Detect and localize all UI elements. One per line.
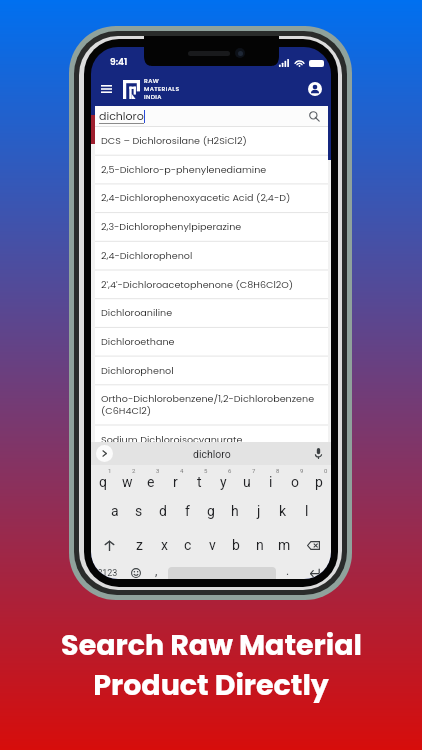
staticText: 9 [300,467,304,474]
button[interactable]: Dichloroaniline [95,298,328,327]
button[interactable]: j [247,496,271,527]
button[interactable]: 2,5-Dichloro-p-phenylenediamine [95,155,328,184]
staticText: v [209,537,216,553]
staticText: m [278,537,291,553]
button[interactable]: c [176,527,200,563]
staticText: z [136,537,143,553]
staticText: l [305,503,309,519]
staticText: t [197,474,202,490]
staticText: ?123 [98,568,118,579]
staticText: 5 [204,467,208,474]
staticText: dichloro [193,448,231,460]
button[interactable]: Ortho-Dichlorobenzene/1,2-Dichlorobenzen… [95,384,328,424]
staticText: y [220,474,227,490]
button[interactable]: Enter [297,563,331,579]
staticText: 2,4-Dichlorophenol [101,249,193,262]
button[interactable]: l [295,496,319,527]
staticText: Dichlorophenol [101,364,174,377]
staticText: 3 [156,467,160,474]
button[interactable]: k [271,496,295,527]
button[interactable]: z [127,527,152,563]
button[interactable]: s [127,496,151,527]
button[interactable]: 2,3-Dichlorophenylpiperazine [95,212,328,241]
button[interactable]: m [272,527,296,563]
button[interactable]: DCS – Dichlorosilane (H2SiCl2) [95,126,328,155]
staticText: b [232,537,240,553]
staticText: Search Raw Material [61,625,362,665]
button[interactable]: Open navigation menu [96,79,116,99]
button[interactable]: Sodium Dichloroisocvanurate [95,425,328,454]
button[interactable]: 2',4'-Dichloroacetophenone (C8H6Cl2O) [95,270,328,299]
staticText: Sodium Dichloroisocvanurate [101,433,243,446]
staticText: n [256,537,264,553]
staticText: Ortho-Dichlorobenzene/1,2-Dichlorobenzen… [101,392,322,417]
staticText: e [147,474,155,490]
staticText: g [207,503,215,519]
staticText: INDIA [144,93,162,101]
button[interactable]: 5 [187,465,211,496]
button[interactable]: ?123 [91,563,124,579]
button[interactable]: x [152,527,176,563]
staticText: 2,4-Dichlorophenoxyacetic Acid (2,4-D) [101,191,291,204]
staticText: 2,5-Dichloro-p-phenylenediamine [101,163,267,176]
staticText: MATERIALS [144,85,180,93]
staticText: o [291,474,299,490]
staticText: d [159,503,167,519]
staticText: , [155,564,158,578]
button[interactable]: Dichloroethane [95,327,328,356]
staticText: f [185,503,190,519]
staticText: c [184,537,192,553]
button[interactable]: a [103,496,127,527]
button[interactable]: Emoji [124,563,147,579]
button[interactable]: v [200,527,224,563]
staticText: 8 [276,467,280,474]
staticText: Dichloroethane [101,335,175,348]
staticText: a [111,503,119,519]
button[interactable]: Search [307,109,322,124]
staticText: s [135,503,143,519]
button[interactable]: 9 [283,465,307,496]
button[interactable]: 7 [235,465,259,496]
button[interactable]: 4 [163,465,187,496]
button[interactable]: 2,4-Dichlorophenol [95,241,328,270]
staticText: RAW [144,77,160,85]
button[interactable]: n [248,527,272,563]
button[interactable]: . [278,563,297,579]
button[interactable]: b [224,527,248,563]
button[interactable]: f [175,496,199,527]
staticText: . [286,564,290,578]
button[interactable]: 1 [91,465,115,496]
staticText: 4 [180,467,184,474]
button[interactable]: 0 [307,465,331,496]
staticText: 1 [108,467,112,474]
staticText: dichloro [99,108,144,123]
button[interactable]: 8 [259,465,283,496]
button[interactable]: g [199,496,223,527]
staticText: u [243,474,251,490]
button[interactable]: 2 [115,465,139,496]
button[interactable]: h [223,496,247,527]
staticText: 2',4'-Dichloroacetophenone (C8H6Cl2O) [101,278,294,291]
staticText: DCS – Dichlorosilane (H2SiCl2) [101,134,247,147]
button[interactable]: Backspace [296,527,331,563]
button[interactable]: More suggestions [96,445,113,462]
staticText: i [269,474,273,490]
button[interactable]: 2,4-Dichlorophenoxyacetic Acid (2,4-D) [95,183,328,212]
staticText: 2,3-Dichlorophenylpiperazine [101,220,242,233]
button[interactable]: 3 [139,465,163,496]
button[interactable]: 6 [211,465,235,496]
staticText: 6 [228,467,232,474]
staticText: Product Directly [93,665,329,705]
staticText: r [173,474,178,490]
button[interactable]: Account [305,79,325,99]
staticText: q [99,474,107,490]
button[interactable]: d [151,496,175,527]
button[interactable]: Shift [91,527,127,563]
button[interactable]: Dichlorophenol [95,356,328,385]
staticText: w [122,474,133,490]
staticText: 9:41 [110,56,128,69]
staticText: 2 [132,467,136,474]
button[interactable]: , [147,563,166,579]
button[interactable]: Voice input [311,446,326,461]
